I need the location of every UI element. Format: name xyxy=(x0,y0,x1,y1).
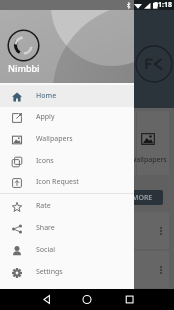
button[interactable]: Wallpapers xyxy=(0,128,134,150)
button[interactable]: Wallpapers xyxy=(105,111,169,175)
button[interactable] xyxy=(105,212,169,249)
staticText: Social xyxy=(36,245,55,255)
button[interactable]: Settings xyxy=(0,261,134,283)
staticText: Settings xyxy=(36,267,63,277)
staticText: Rate xyxy=(36,201,51,211)
staticText: Wallpapers xyxy=(36,134,73,144)
button[interactable]: Icons xyxy=(0,150,134,172)
staticText: Apply xyxy=(36,112,55,122)
button[interactable] xyxy=(105,251,169,288)
staticText: 01:18 xyxy=(154,0,172,10)
button[interactable]: MORE xyxy=(122,190,163,205)
button[interactable]: Home xyxy=(0,85,134,107)
staticText: MORE xyxy=(132,193,153,203)
button[interactable]: Share xyxy=(0,217,134,239)
staticText: Icon Request xyxy=(36,177,79,187)
staticText: Nimbbi xyxy=(8,62,40,74)
staticText: Icons xyxy=(36,156,54,166)
button[interactable]: Rate xyxy=(0,195,134,217)
button[interactable]: Icon Request xyxy=(0,171,134,193)
staticText: Wallpapers xyxy=(130,155,167,165)
button[interactable]: Social xyxy=(0,239,134,261)
button[interactable]: Apply xyxy=(0,106,134,128)
staticText: Share xyxy=(36,223,55,233)
staticText: Home xyxy=(36,91,57,101)
